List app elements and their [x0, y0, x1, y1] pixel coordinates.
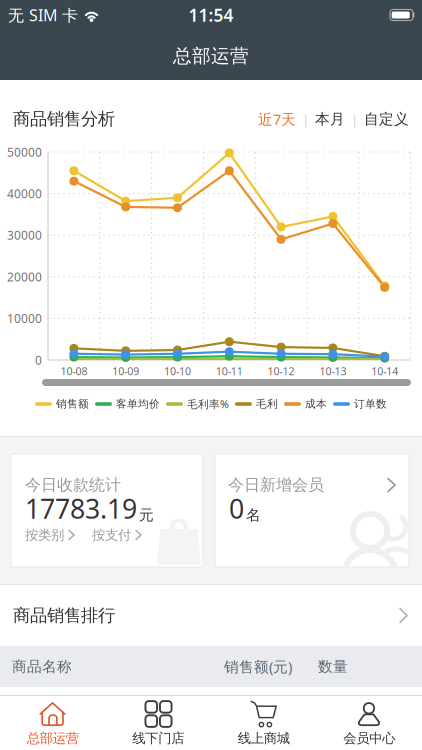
staticText: 总部运营: [27, 730, 79, 746]
staticText: 40000: [7, 186, 42, 201]
staticText: 销售额(元): [224, 657, 292, 676]
button[interactable]: 近7天: [258, 109, 296, 129]
staticText: 无 SIM 卡: [8, 4, 78, 26]
button[interactable]: 线上商城: [211, 695, 316, 750]
button[interactable]: 按类别: [25, 527, 75, 543]
staticText: 50000: [7, 144, 42, 160]
staticText: 线上商城: [238, 730, 290, 746]
staticText: 10-08: [60, 364, 87, 378]
button[interactable]: 按支付: [92, 527, 142, 543]
button[interactable]: 今日收款统计: [11, 454, 203, 567]
staticText: 10-14: [371, 364, 398, 378]
staticText: 客单均价: [116, 397, 160, 410]
staticText: 本月: [315, 110, 345, 128]
button[interactable]: 商品销售排行: [0, 585, 422, 646]
staticText: 成本: [305, 397, 327, 410]
staticText: 按支付: [92, 527, 131, 543]
staticText: 17783.19: [25, 491, 137, 526]
staticText: 总部运营: [173, 44, 249, 67]
staticText: 自定义: [364, 110, 409, 128]
staticText: 0: [35, 352, 42, 368]
staticText: 线下门店: [132, 730, 184, 746]
button[interactable]: 会员中心: [316, 695, 422, 750]
button[interactable]: 本月: [315, 110, 345, 128]
staticText: 商品名称: [12, 657, 72, 675]
button[interactable]: 线下门店: [105, 695, 211, 750]
staticText: 10-11: [216, 364, 243, 378]
staticText: 商品销售分析: [13, 108, 115, 130]
staticText: 30000: [7, 227, 42, 243]
button[interactable]: 总部运营: [0, 695, 105, 750]
staticText: 销售额: [56, 397, 89, 410]
staticText: 名: [246, 506, 261, 524]
staticText: 毛利率%: [187, 397, 229, 411]
staticText: 会员中心: [343, 730, 395, 746]
staticText: |: [302, 110, 309, 128]
staticText: 元: [139, 506, 154, 524]
staticText: 近7天: [258, 109, 296, 129]
staticText: 按类别: [25, 527, 64, 543]
staticText: 商品销售排行: [13, 605, 115, 626]
staticText: 今日新增会员: [228, 475, 324, 495]
staticText: 10000: [7, 310, 42, 326]
staticText: 订单数: [354, 397, 387, 410]
staticText: 20000: [7, 269, 42, 285]
button[interactable]: 今日新增会员: [215, 454, 409, 567]
staticText: 10-09: [112, 364, 139, 378]
staticText: 数量: [318, 657, 348, 675]
staticText: 毛利: [256, 397, 278, 410]
staticText: 11:54: [188, 3, 233, 26]
button[interactable]: 自定义: [364, 110, 409, 128]
staticText: 10-10: [164, 364, 191, 378]
staticText: 10-13: [319, 364, 346, 378]
staticText: 10-12: [268, 364, 295, 378]
staticText: 0: [229, 491, 244, 526]
staticText: |: [351, 110, 358, 128]
staticText: 今日收款统计: [25, 475, 121, 495]
